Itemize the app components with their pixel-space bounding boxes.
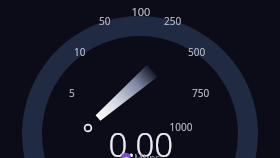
button[interactable]: Speedtest gauge, 0.00 Mbps download: [0, 0, 280, 158]
